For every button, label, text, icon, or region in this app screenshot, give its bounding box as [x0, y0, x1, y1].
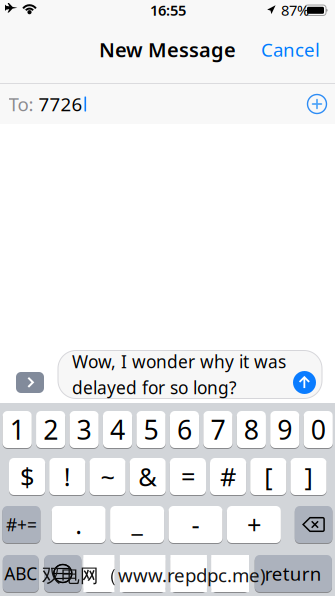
- button[interactable]: 3: [69, 411, 99, 449]
- button[interactable]: Next keyboard: [44, 555, 81, 593]
- staticText: 7726: [38, 92, 82, 116]
- button[interactable]: 9: [270, 411, 299, 449]
- button[interactable]: Candidate: [170, 555, 207, 593]
- staticText: 3: [77, 412, 92, 447]
- button[interactable]: Delete: [295, 506, 332, 544]
- button[interactable]: Candidate: [211, 555, 249, 593]
- button[interactable]: $: [9, 458, 45, 496]
- button[interactable]: +: [227, 506, 281, 544]
- button[interactable]: 6: [170, 411, 199, 449]
- button[interactable]: Space: [83, 555, 114, 593]
- button[interactable]: Candidate: [120, 555, 165, 593]
- staticText: #: [220, 460, 236, 493]
- button[interactable]: _: [110, 506, 164, 544]
- staticText: 双电网（www.repdpc.me): [42, 563, 266, 587]
- button[interactable]: #+=: [2, 506, 40, 544]
- staticText: ~: [100, 460, 114, 493]
- staticText: &: [138, 460, 157, 493]
- button[interactable]: #: [210, 458, 246, 496]
- button[interactable]: 7: [203, 411, 232, 449]
- staticText: Cancel: [261, 37, 320, 62]
- button[interactable]: 5: [136, 411, 166, 449]
- button[interactable]: &: [130, 458, 166, 496]
- staticText: 8: [244, 412, 259, 447]
- button[interactable]: 2: [36, 411, 65, 449]
- staticText: 0: [311, 412, 326, 447]
- staticText: [: [264, 460, 272, 493]
- staticText: 87%: [281, 0, 309, 20]
- button[interactable]: !: [49, 458, 85, 496]
- staticText: 1: [10, 412, 25, 447]
- button[interactable]: ~: [89, 458, 126, 496]
- staticText: _: [132, 505, 143, 539]
- staticText: .: [75, 508, 82, 541]
- staticText: -: [191, 508, 199, 541]
- button[interactable]: 8: [237, 411, 266, 449]
- staticText: delayed for so long?: [72, 376, 237, 399]
- button[interactable]: Send: [293, 371, 316, 394]
- staticText: ABC: [4, 562, 37, 585]
- staticText: 7: [210, 412, 225, 447]
- staticText: New Message: [99, 36, 236, 63]
- button[interactable]: return: [255, 555, 332, 593]
- button[interactable]: [: [250, 458, 286, 496]
- staticText: #+=: [6, 513, 37, 536]
- button[interactable]: Add contact: [302, 84, 332, 124]
- button[interactable]: =: [170, 458, 206, 496]
- button[interactable]: Apps: [16, 372, 44, 393]
- staticText: To:: [8, 92, 33, 116]
- staticText: 4: [110, 412, 125, 447]
- button[interactable]: .: [52, 506, 106, 544]
- staticText: Wow, I wonder why it was: [72, 350, 286, 373]
- staticText: =: [181, 460, 195, 493]
- button[interactable]: ]: [290, 458, 327, 496]
- button[interactable]: ABC: [3, 555, 39, 593]
- staticText: !: [64, 460, 71, 493]
- staticText: 9: [277, 412, 292, 447]
- staticText: 5: [143, 412, 158, 447]
- button[interactable]: -: [168, 506, 222, 544]
- staticText: ]: [304, 460, 312, 493]
- staticText: 16:55: [150, 0, 186, 20]
- staticText: return: [265, 561, 322, 586]
- staticText: $: [20, 460, 34, 493]
- staticText: 6: [177, 412, 192, 447]
- button[interactable]: 4: [103, 411, 132, 449]
- button[interactable]: 0: [304, 411, 333, 449]
- button[interactable]: Cancel: [258, 28, 320, 71]
- staticText: +: [247, 508, 261, 541]
- staticText: 2: [43, 412, 58, 447]
- button[interactable]: 1: [3, 411, 32, 449]
